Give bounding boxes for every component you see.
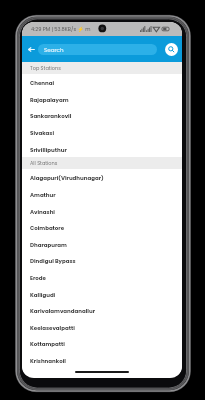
staticText: Alagapuri(Virudhunagar) [30, 174, 104, 182]
staticText: 4:29 PM | 53.8KB/s ⚡ m [31, 26, 91, 33]
button[interactable]: Chennai [22, 74, 182, 91]
button[interactable]: Dharapuram [22, 236, 182, 253]
staticText: Top Stations [30, 65, 61, 72]
staticText: All Stations [30, 160, 58, 167]
staticText: Srivilliputhur [30, 146, 67, 154]
button[interactable]: Keelasevalpatti [22, 319, 182, 336]
button[interactable]: Erode [22, 269, 182, 286]
button[interactable]: Karivalamvandanallur [22, 302, 182, 319]
button[interactable]: Srivilliputhur [22, 141, 182, 158]
button[interactable]: Search [165, 43, 178, 56]
staticText: Sivakasi [30, 129, 55, 137]
button[interactable]: Avinashi [22, 203, 182, 220]
staticText: Krishnankoil [30, 357, 66, 365]
button[interactable]: Rajapalayam [22, 91, 182, 108]
button[interactable]: Sankarankovil [22, 107, 182, 124]
button[interactable]: Kalligudi [22, 286, 182, 303]
staticText: Dharapuram [30, 241, 67, 249]
staticText: Erode [30, 274, 46, 282]
button[interactable]: Coimbatore [22, 219, 182, 236]
button[interactable]: Kottampatti [22, 335, 182, 352]
button[interactable]: Search [38, 44, 157, 55]
staticText: Avinashi [30, 208, 55, 216]
staticText: Search [44, 46, 64, 54]
staticText: Dindigul Bypass [30, 257, 76, 265]
staticText: Kalligudi [30, 291, 56, 299]
staticText: Amathur [30, 191, 56, 199]
staticText: Sankarankovil [30, 112, 72, 120]
staticText: Chennai [30, 79, 55, 87]
button[interactable]: Krishnankoil [22, 352, 182, 369]
staticText: Karivalamvandanallur [30, 307, 96, 315]
staticText: Kottampatti [30, 340, 65, 348]
staticText: Keelasevalpatti [30, 324, 75, 332]
button[interactable]: Alagapuri(Virudhunagar) [22, 169, 182, 186]
button[interactable]: Back [24, 42, 38, 56]
staticText: Coimbatore [30, 224, 65, 232]
button[interactable]: Dindigul Bypass [22, 252, 182, 269]
button[interactable]: Amathur [22, 186, 182, 203]
button[interactable]: Sivakasi [22, 124, 182, 141]
staticText: Rajapalayam [30, 96, 69, 104]
